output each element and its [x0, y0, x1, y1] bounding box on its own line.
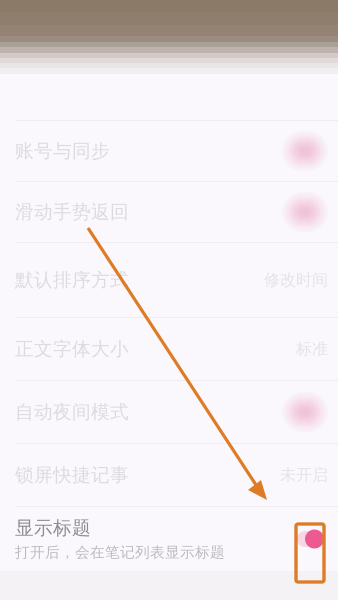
staticText: 自动夜间模式 [15, 400, 129, 423]
button[interactable]: 默认排序方式 [0, 243, 338, 317]
staticText: 未开启 [280, 465, 328, 485]
button[interactable]: 滑动手势返回 [0, 182, 338, 242]
staticText: 正文字体大小 [15, 337, 129, 360]
staticText: 显示标题 [15, 516, 91, 539]
button[interactable]: 锁屏快捷记事 [0, 444, 338, 506]
staticText: 账号与同步 [15, 139, 110, 162]
button[interactable]: 自动夜间模式 [0, 381, 338, 443]
staticText: 滑动手势返回 [15, 200, 129, 223]
button[interactable]: 账号与同步 [0, 121, 338, 181]
staticText: 打开后，会在笔记列表显示标题 [15, 543, 225, 561]
button[interactable]: 显示标题 [0, 507, 338, 571]
staticText: 标准 [296, 339, 328, 359]
staticText: 默认排序方式 [15, 268, 129, 291]
staticText: 修改时间 [264, 270, 328, 290]
button[interactable]: 正文字体大小 [0, 318, 338, 380]
staticText: 锁屏快捷记事 [15, 463, 129, 486]
